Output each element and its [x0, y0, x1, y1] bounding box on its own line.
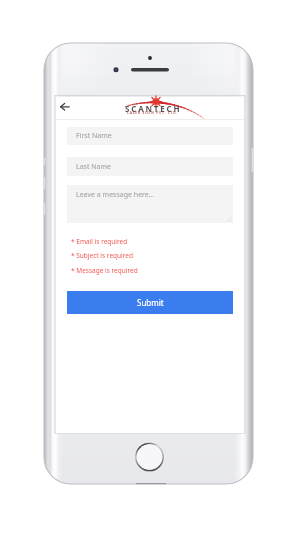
- staticText: * Email is required: [71, 237, 128, 246]
- button[interactable]: Submit: [67, 291, 233, 314]
- staticText: Leave a message here...: [76, 190, 155, 200]
- button[interactable]: Last Name: [67, 157, 233, 176]
- button[interactable]: Leave a message here...: [67, 185, 233, 223]
- button[interactable]: First Name: [67, 127, 233, 145]
- staticText: SCANTECH: [125, 103, 182, 114]
- staticText: LASER SOLN PVT. LTD.: [127, 111, 179, 115]
- staticText: Submit: [137, 297, 164, 308]
- staticText: Last Name: [76, 162, 112, 172]
- button[interactable]: Back: [56, 98, 73, 116]
- staticText: * Subject is required: [71, 251, 133, 260]
- staticText: * Message is required: [71, 266, 138, 275]
- staticText: First Name: [76, 131, 112, 141]
